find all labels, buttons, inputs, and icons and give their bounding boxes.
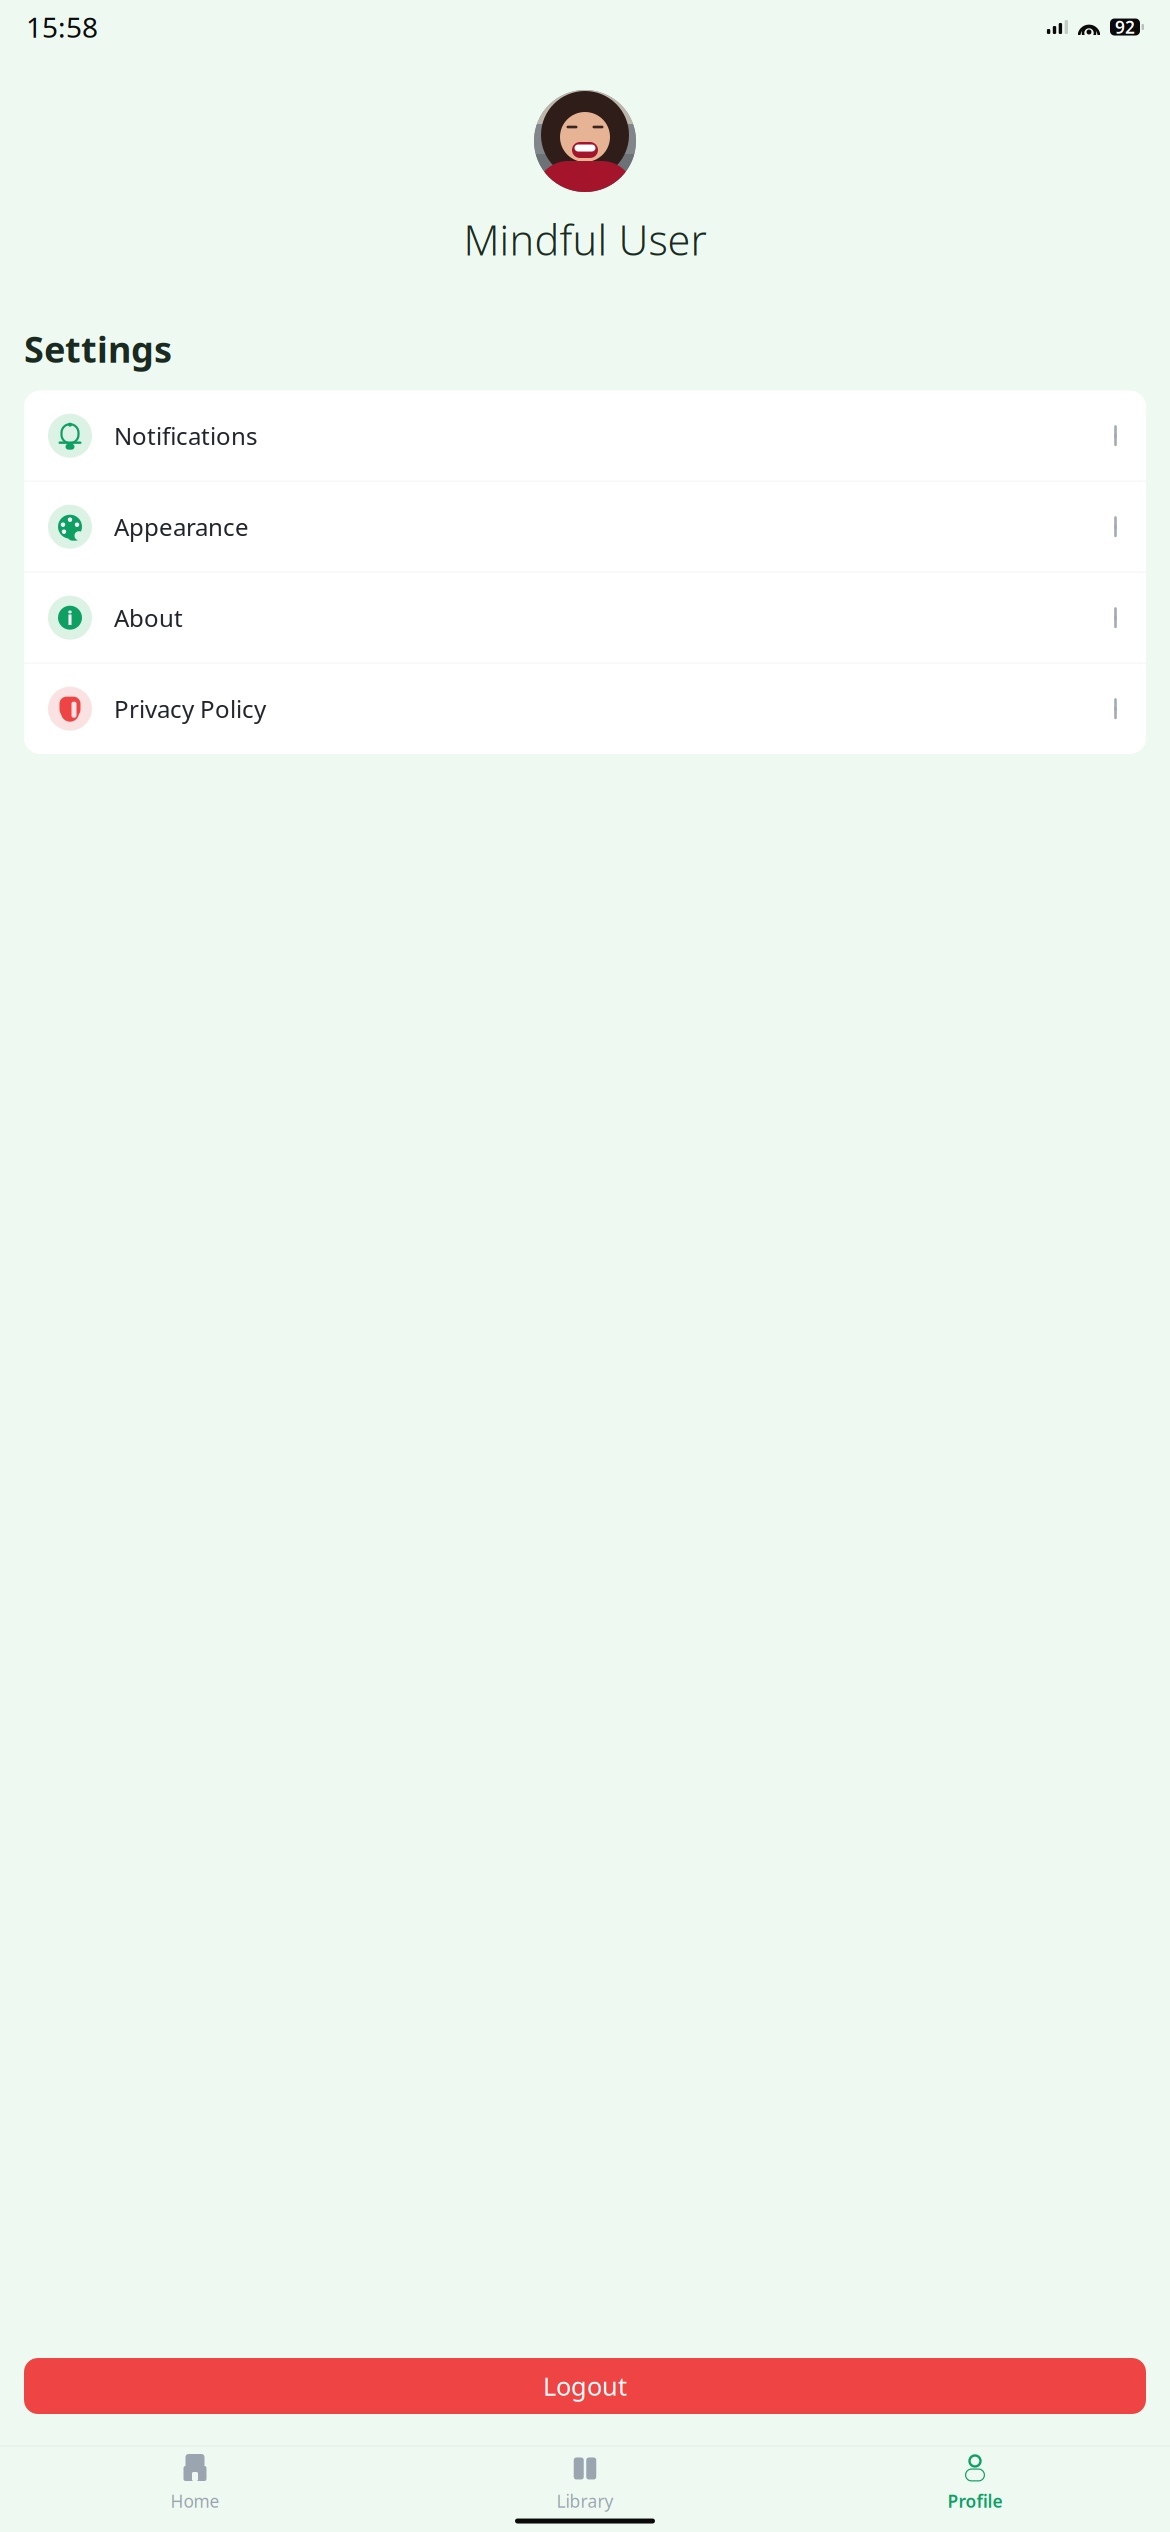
button[interactable]: Home bbox=[0, 2444, 390, 2512]
staticText: Settings bbox=[24, 325, 172, 373]
button[interactable]: Logout bbox=[24, 2358, 1146, 2414]
staticText: 15:58 bbox=[26, 8, 98, 46]
staticText: Profile bbox=[947, 2489, 1002, 2512]
button[interactable]: i bbox=[24, 573, 1146, 663]
staticText: Notifications bbox=[114, 420, 257, 452]
staticText: Appearance bbox=[114, 511, 249, 543]
button[interactable]: Appearance bbox=[24, 482, 1146, 572]
button[interactable]: Privacy Policy bbox=[24, 664, 1146, 754]
button[interactable]: Library bbox=[390, 2444, 780, 2512]
staticText: Home bbox=[170, 2489, 219, 2512]
staticText: About bbox=[114, 602, 183, 634]
button[interactable]: Profile bbox=[780, 2444, 1170, 2512]
staticText: Library bbox=[556, 2489, 613, 2512]
staticText: Privacy Policy bbox=[114, 693, 266, 725]
staticText: i bbox=[67, 604, 73, 631]
staticText: Mindful User bbox=[463, 212, 706, 267]
staticText: 92 bbox=[1115, 15, 1135, 38]
staticText: Logout bbox=[543, 2369, 627, 2403]
button[interactable]: Notifications bbox=[24, 391, 1146, 481]
